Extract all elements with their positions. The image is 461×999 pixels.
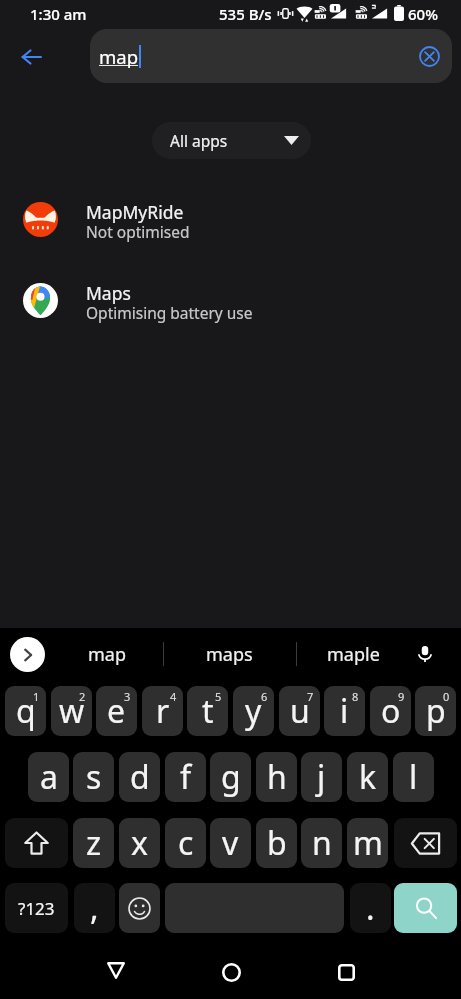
staticText: l xyxy=(409,755,418,799)
button[interactable]: All apps xyxy=(152,122,311,159)
staticText: b xyxy=(267,821,287,865)
button[interactable]: l xyxy=(393,752,434,802)
staticText: 4 xyxy=(170,689,177,704)
button[interactable]: emoji xyxy=(119,883,160,933)
staticText: s xyxy=(86,755,102,799)
staticText: Optimising battery use xyxy=(86,302,253,323)
staticText: z xyxy=(86,821,102,865)
button[interactable]: e xyxy=(96,686,137,736)
staticText: p xyxy=(426,689,446,733)
button[interactable]: n xyxy=(301,818,342,868)
staticText: 8 xyxy=(352,689,359,704)
button[interactable]: Home xyxy=(208,949,254,995)
button[interactable]: Back xyxy=(9,34,54,79)
button[interactable]: i xyxy=(324,686,365,736)
staticText: o xyxy=(381,689,401,733)
staticText: e xyxy=(107,689,126,733)
button[interactable]: c xyxy=(165,818,206,868)
button[interactable]: Recents xyxy=(323,949,369,995)
button[interactable]: search xyxy=(394,883,457,933)
button[interactable]: g xyxy=(210,752,251,802)
button[interactable]: r xyxy=(142,686,183,736)
staticText: f xyxy=(180,755,192,799)
staticText: Maps xyxy=(86,281,131,305)
button[interactable]: Clear search xyxy=(409,36,449,76)
staticText: map xyxy=(99,44,139,69)
button[interactable]: Maps xyxy=(0,260,461,340)
staticText: All apps xyxy=(170,130,228,151)
staticText: 9 xyxy=(398,689,405,704)
button[interactable]: y xyxy=(233,686,274,736)
staticText: m xyxy=(353,821,383,865)
button[interactable]: h xyxy=(256,752,297,802)
button[interactable]: Expand suggestions xyxy=(10,637,45,672)
staticText: maple xyxy=(327,642,380,667)
staticText: maps xyxy=(206,642,253,667)
staticText: i xyxy=(340,689,349,733)
button[interactable]: b xyxy=(256,818,297,868)
button[interactable]: j xyxy=(301,752,342,802)
staticText: , xyxy=(90,886,99,930)
staticText: k xyxy=(359,755,377,799)
staticText: c xyxy=(178,821,194,865)
staticText: h xyxy=(267,755,287,799)
staticText: 7 xyxy=(307,689,314,704)
staticText: r xyxy=(156,689,170,733)
staticText: 6 xyxy=(261,689,268,704)
button[interactable]: v xyxy=(210,818,251,868)
staticText: t xyxy=(202,689,214,733)
button[interactable]: s xyxy=(73,752,114,802)
staticText: . xyxy=(366,886,375,930)
button[interactable]: m xyxy=(347,818,388,868)
staticText: 3 xyxy=(124,689,131,704)
staticText: d xyxy=(130,755,150,799)
button[interactable] xyxy=(165,883,344,933)
staticText: q xyxy=(16,689,36,733)
staticText: u xyxy=(290,689,310,733)
staticText: Not optimised xyxy=(86,221,190,242)
staticText: 535 B/s xyxy=(219,4,272,24)
button[interactable]: MapMyRide xyxy=(0,179,461,259)
staticText: 5 xyxy=(215,689,222,704)
button[interactable]: w xyxy=(51,686,92,736)
button[interactable]: map xyxy=(50,628,163,680)
staticText: y xyxy=(245,689,262,733)
button[interactable]: d xyxy=(119,752,160,802)
staticText: w xyxy=(59,689,85,733)
staticText: 0 xyxy=(443,689,450,704)
staticText: 60% xyxy=(408,4,438,24)
button[interactable]: z xyxy=(73,818,114,868)
staticText: 2 xyxy=(79,689,86,704)
button[interactable]: o xyxy=(370,686,411,736)
button[interactable]: Voice input xyxy=(409,638,441,670)
staticText: v xyxy=(222,821,239,865)
button[interactable]: k xyxy=(347,752,388,802)
button[interactable]: backspace xyxy=(394,818,457,868)
button[interactable]: map xyxy=(90,29,452,83)
button[interactable]: . xyxy=(350,883,391,933)
staticText: 1 xyxy=(33,689,40,704)
staticText: n xyxy=(312,821,332,865)
button[interactable]: shift xyxy=(5,818,68,868)
staticText: j xyxy=(317,755,326,799)
button[interactable]: q xyxy=(5,686,46,736)
button[interactable]: a xyxy=(28,752,69,802)
staticText: a xyxy=(40,755,58,799)
button[interactable]: maps xyxy=(163,628,296,680)
button[interactable]: maple xyxy=(296,628,410,680)
staticText: g xyxy=(221,755,241,799)
button[interactable]: u xyxy=(279,686,320,736)
staticText: MapMyRide xyxy=(86,200,184,224)
staticText: 1:30 am xyxy=(30,4,87,24)
staticText: ?123 xyxy=(18,897,55,920)
staticText: x xyxy=(131,821,148,865)
button[interactable]: , xyxy=(74,883,115,933)
button[interactable]: ?123 xyxy=(5,883,68,933)
button[interactable]: f xyxy=(165,752,206,802)
button[interactable]: p xyxy=(415,686,456,736)
button[interactable]: Back xyxy=(93,947,139,993)
button[interactable]: x xyxy=(119,818,160,868)
button[interactable]: t xyxy=(187,686,228,736)
staticText: map xyxy=(88,642,126,667)
